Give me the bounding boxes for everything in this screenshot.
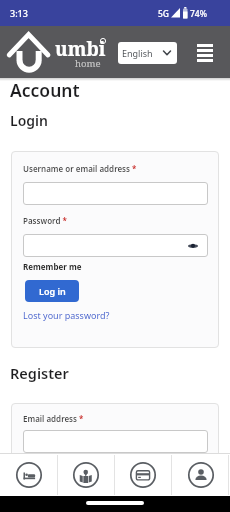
staticText: Password * xyxy=(23,215,67,226)
staticText: Login xyxy=(10,111,48,130)
staticText: Remember me xyxy=(23,261,82,272)
staticText: Log in xyxy=(39,285,66,297)
button[interactable] xyxy=(23,234,208,257)
staticText: 5G xyxy=(158,8,170,20)
button[interactable] xyxy=(172,453,230,496)
staticText: Username or email address * xyxy=(23,163,137,174)
staticText: Register xyxy=(10,363,69,383)
staticText: Email address * xyxy=(23,413,84,424)
button[interactable]: Lost your password? xyxy=(23,309,110,321)
staticText: English xyxy=(122,47,153,59)
button[interactable] xyxy=(57,453,114,496)
button[interactable] xyxy=(114,453,172,496)
staticText: 74% xyxy=(190,8,207,20)
button[interactable] xyxy=(23,182,208,205)
button[interactable] xyxy=(197,44,213,62)
button[interactable] xyxy=(0,453,57,496)
staticText: home xyxy=(75,57,101,70)
staticText: 3:13 xyxy=(10,7,28,19)
staticText: Account xyxy=(10,78,80,102)
staticText: umbi xyxy=(55,36,106,62)
button[interactable]: English xyxy=(118,42,177,64)
button[interactable] xyxy=(23,430,208,453)
button[interactable]: Log in xyxy=(25,280,79,302)
